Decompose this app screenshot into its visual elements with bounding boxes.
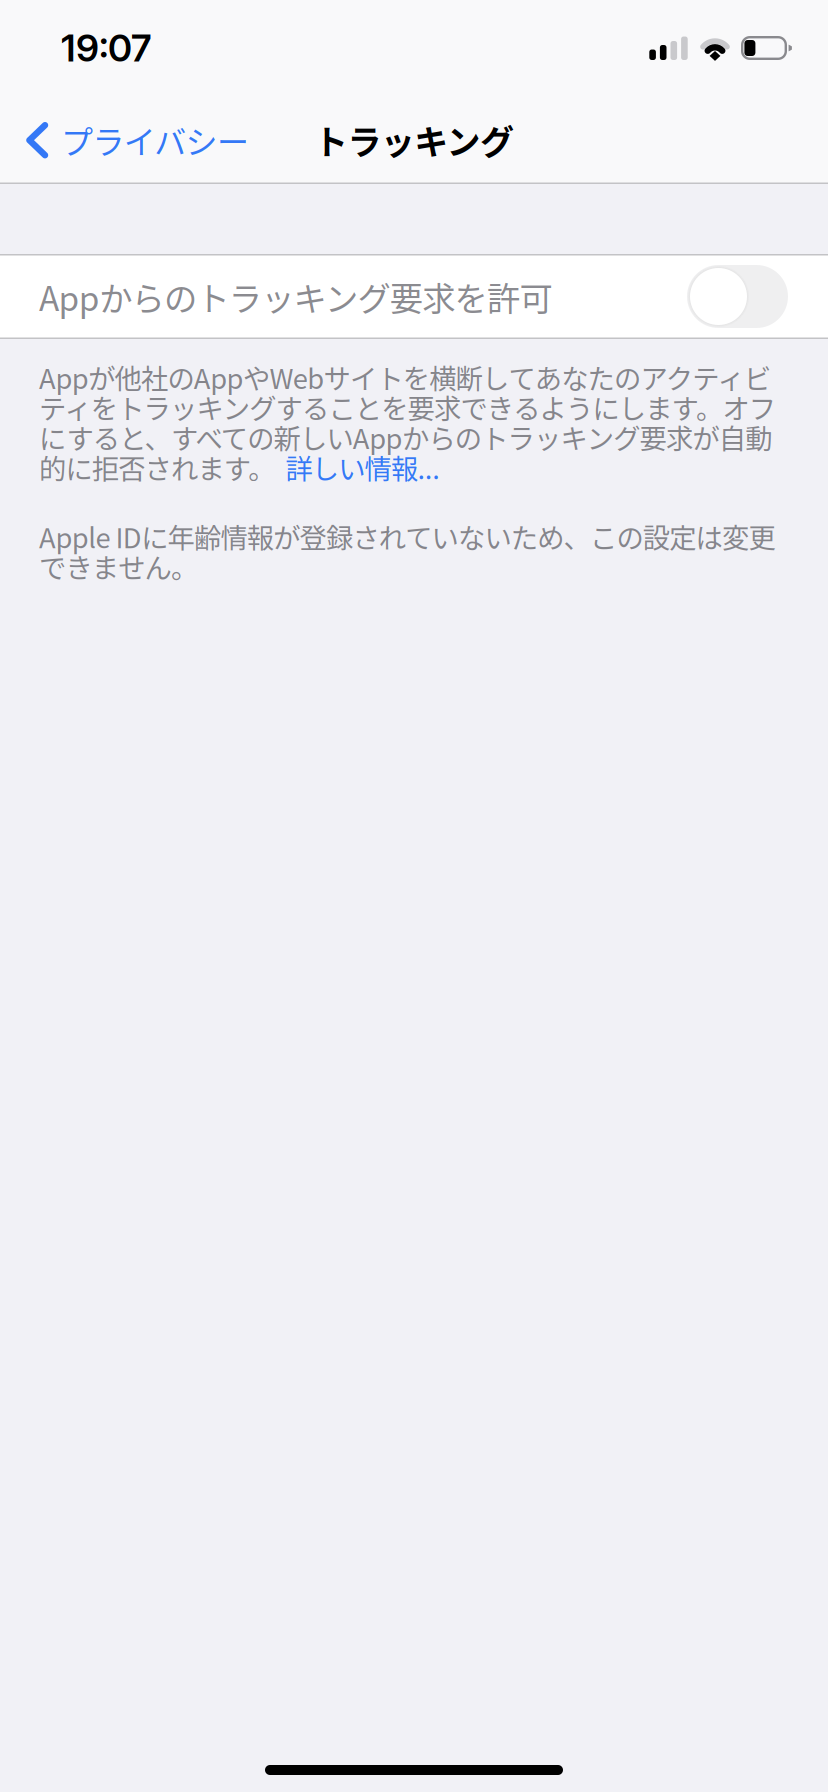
staticText: Appからのトラッキング要求を許可 — [39, 272, 552, 321]
staticText: トラッキング — [314, 115, 514, 165]
staticText: Appが他社のAppやWebサイトを横断してあなたのアクティビティをトラッキング… — [39, 362, 776, 482]
staticText: プライバシー — [61, 117, 249, 163]
staticText: Apple IDに年齢情報が登録されていないため、この設定は変更できません。 — [39, 521, 775, 581]
staticText: 19:07 — [61, 25, 151, 71]
button[interactable]: Appからのトラッキング要求を許可 — [0, 254, 828, 339]
button[interactable]: プライバシー — [0, 96, 265, 184]
